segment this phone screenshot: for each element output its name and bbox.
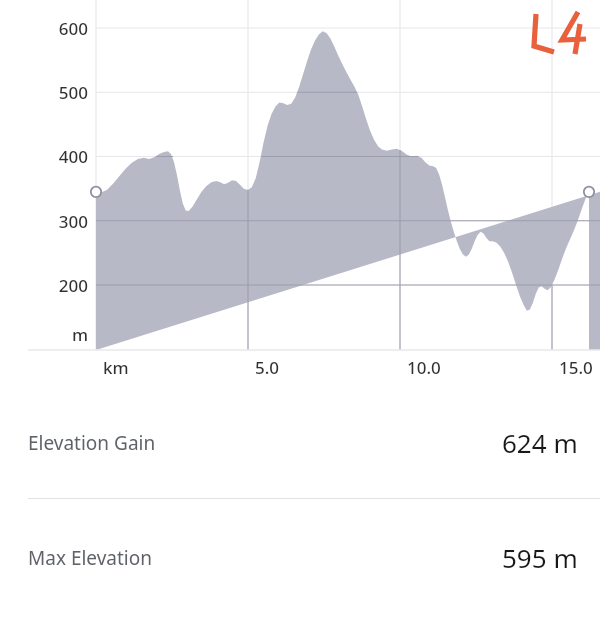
other: L4 route label [528, 8, 600, 60]
staticText: Max Elevation [28, 545, 152, 571]
staticText: 400 [0, 145, 88, 168]
staticText: 600 [0, 17, 88, 40]
staticText: 624 m [502, 425, 578, 460]
staticText: Elevation Gain [28, 430, 156, 456]
staticText: m [0, 323, 88, 346]
button[interactable]: Elevation profile chart [0, 0, 600, 385]
staticText: 15.0 [559, 356, 593, 379]
staticText: 500 [0, 81, 88, 104]
staticText: 200 [0, 274, 88, 297]
button[interactable]: Elevation Gain [0, 386, 600, 498]
staticText: 5.0 [255, 356, 280, 379]
button[interactable]: Max Elevation [0, 499, 600, 616]
staticText: 595 m [502, 540, 578, 575]
staticText: km [103, 356, 129, 379]
staticText: 300 [0, 210, 88, 233]
staticText: 10.0 [407, 356, 441, 379]
